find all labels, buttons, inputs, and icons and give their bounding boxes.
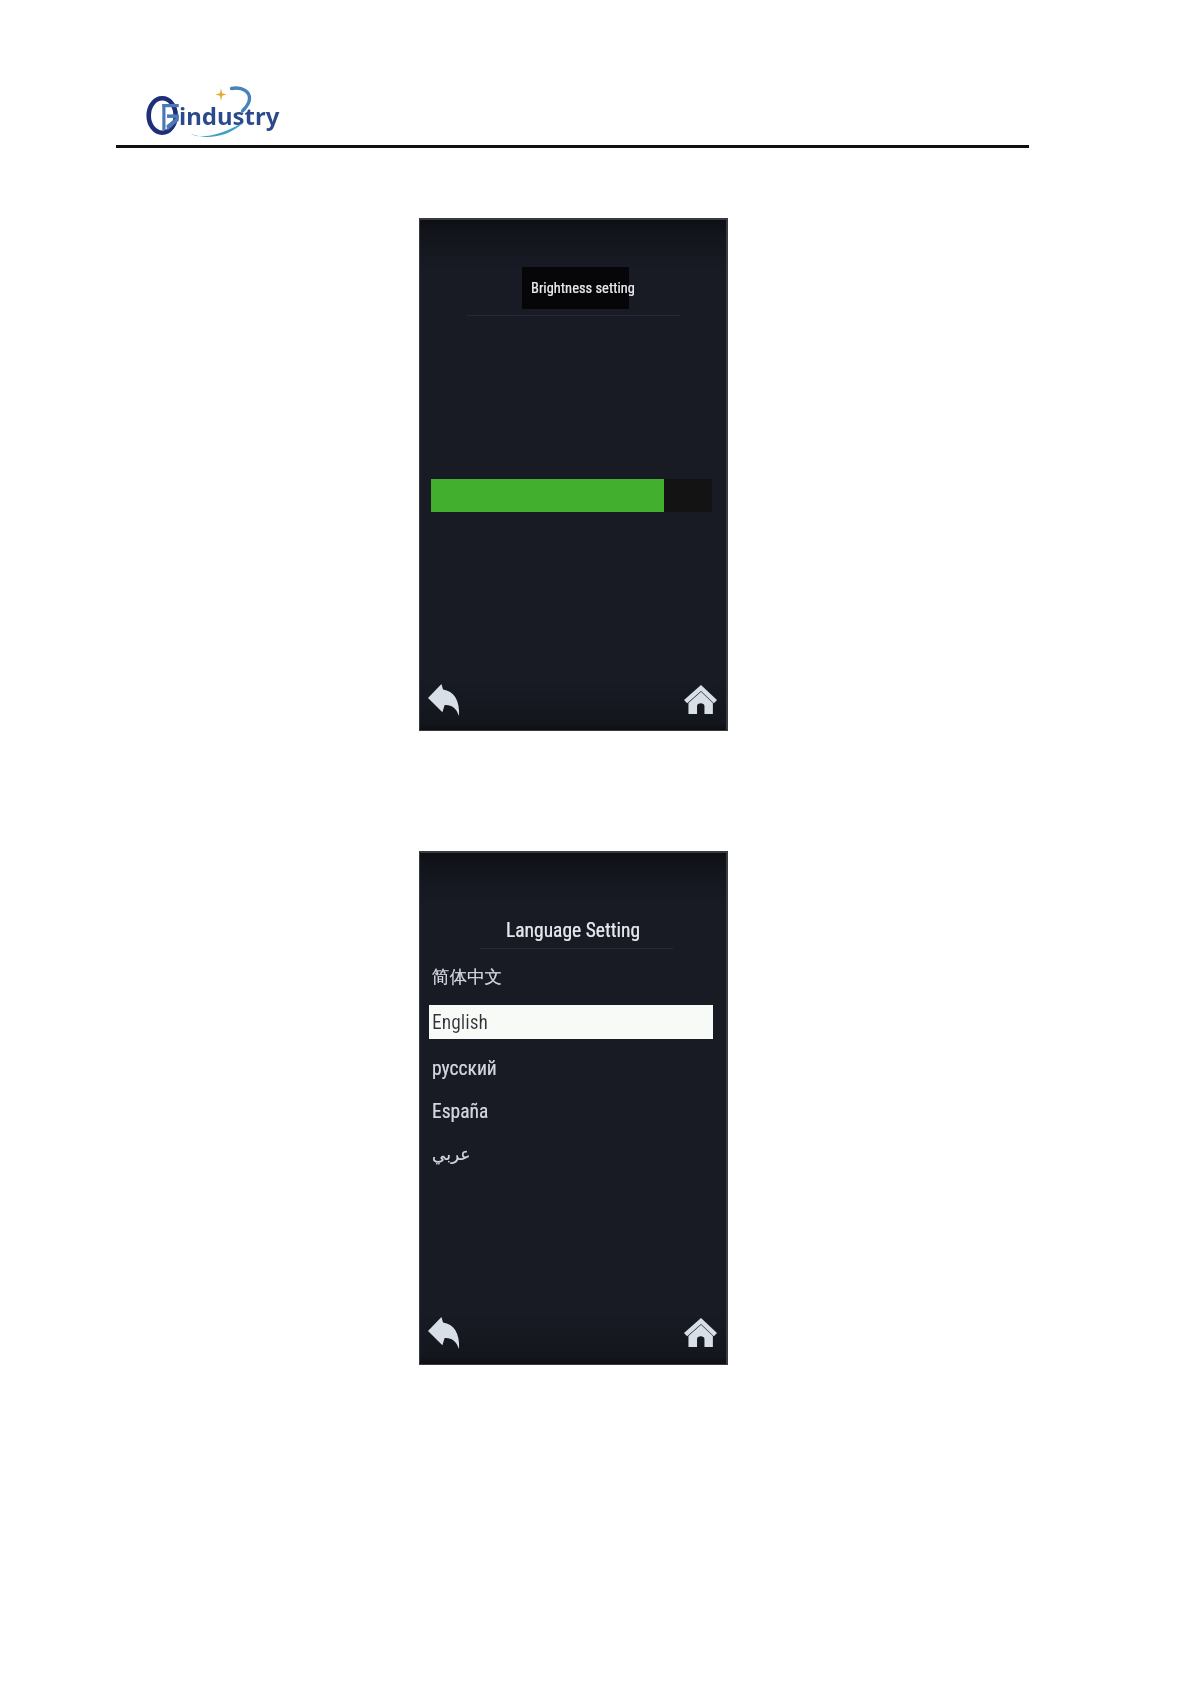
button[interactable]: Back	[420, 1305, 472, 1361]
button[interactable]: Brightness slider	[431, 479, 712, 512]
button[interactable]: English	[429, 1005, 713, 1039]
button[interactable]: Home	[672, 672, 729, 728]
staticText: 简体中文	[432, 966, 502, 988]
button[interactable]: Home	[672, 1305, 729, 1361]
button[interactable]: España	[429, 1094, 713, 1128]
button[interactable]: русский	[429, 1051, 713, 1085]
button[interactable]: 简体中文	[429, 960, 713, 994]
staticText: عربي	[432, 1144, 471, 1164]
button[interactable]: عربي	[429, 1137, 713, 1171]
button[interactable]: Back	[420, 672, 472, 728]
staticText: Language Setting	[420, 919, 726, 942]
staticText: industry	[179, 99, 280, 132]
staticText: English	[432, 1011, 489, 1034]
staticText: Brightness setting	[531, 280, 635, 297]
staticText: русский	[432, 1057, 497, 1080]
staticText: España	[432, 1100, 489, 1123]
